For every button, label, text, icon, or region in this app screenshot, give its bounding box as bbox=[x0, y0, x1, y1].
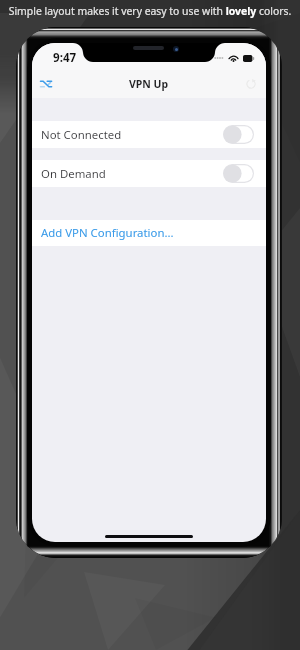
button[interactable]: On Demand bbox=[32, 160, 266, 187]
button[interactable]: Refresh bbox=[242, 75, 260, 93]
staticText: 9:47 bbox=[53, 50, 77, 66]
staticText: Add VPN Configuration... bbox=[41, 225, 174, 241]
staticText: Simple layout makes it very easy to use … bbox=[0, 4, 300, 18]
staticText: VPN Up bbox=[129, 77, 169, 91]
button[interactable]: Not Connected bbox=[32, 121, 266, 148]
button[interactable]: Add VPN Configuration... bbox=[32, 220, 266, 246]
button[interactable]: VPN settings bbox=[37, 75, 55, 93]
staticText: Not Connected bbox=[41, 127, 122, 143]
staticText: On Demand bbox=[41, 166, 106, 182]
